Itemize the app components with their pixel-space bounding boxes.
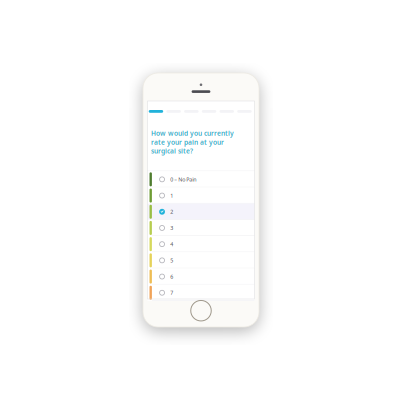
button[interactable]: 7 [147, 285, 254, 301]
staticText: 4 [170, 241, 173, 248]
staticText: 6 [170, 273, 173, 280]
button[interactable]: 0 – No Pain [147, 171, 254, 187]
button[interactable]: 5 [147, 252, 254, 268]
staticText: 3 [170, 224, 173, 231]
staticText: 5 [170, 257, 173, 264]
button[interactable]: 4 [147, 236, 254, 252]
button[interactable]: 2 [147, 204, 254, 220]
staticText: 2 [170, 208, 173, 215]
staticText: 7 [170, 289, 173, 296]
staticText: How would you currently rate your pain a… [151, 129, 234, 155]
button[interactable]: 6 [147, 268, 254, 285]
button[interactable]: 1 [147, 187, 254, 204]
staticText: 0 – No Pain [170, 176, 196, 183]
staticText: 1 [170, 192, 173, 199]
button[interactable]: 3 [147, 220, 254, 236]
